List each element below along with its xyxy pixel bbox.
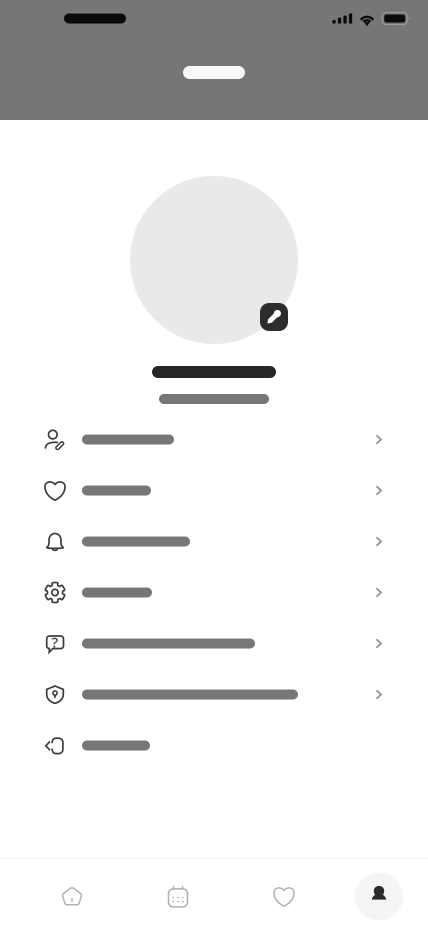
button[interactable]: Edit profile: [0, 414, 428, 465]
button[interactable]: Log out: [0, 720, 428, 771]
button[interactable]: Favourites: [231, 861, 337, 930]
staticText: ?: [51, 632, 58, 652]
button[interactable]: Privacy and security: [0, 669, 428, 720]
button[interactable]: Calendar: [125, 861, 231, 930]
button[interactable]: Home: [19, 861, 125, 930]
button[interactable]: Notifications: [0, 516, 428, 567]
button[interactable]: Edit profile photo: [260, 303, 288, 331]
button[interactable]: Profile: [337, 861, 421, 930]
button[interactable]: Settings: [0, 567, 428, 618]
button[interactable]: Help and support: [0, 618, 428, 669]
button[interactable]: Favourites: [0, 465, 428, 516]
